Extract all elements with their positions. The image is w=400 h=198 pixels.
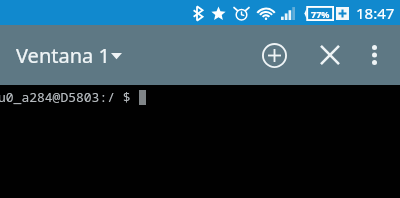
staticText: u0_a284@D5803:/ $ [0, 88, 139, 106]
staticText: 77% [311, 8, 330, 20]
button[interactable]: Ventana 1 [16, 42, 122, 69]
button[interactable]: More options [354, 35, 394, 75]
staticText: Ventana 1 [16, 42, 110, 69]
staticText: 18:47 [356, 3, 395, 23]
button[interactable]: Close window [306, 31, 354, 79]
button[interactable]: New window [250, 31, 298, 79]
